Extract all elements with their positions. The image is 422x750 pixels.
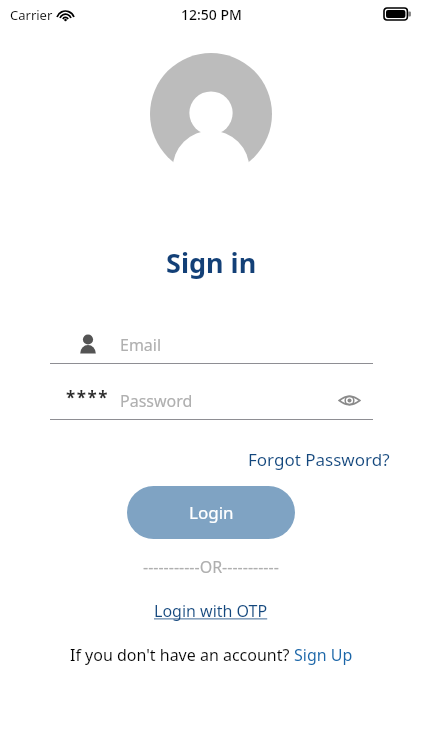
button[interactable]: Email [50, 325, 373, 364]
staticText: If you don't have an account? [70, 644, 294, 666]
staticText: **** [66, 386, 109, 409]
button[interactable]: **** [50, 381, 373, 420]
staticText: Password [120, 390, 193, 412]
staticText: Login with OTP [154, 600, 268, 622]
button[interactable]: Login with OTP [150, 598, 272, 624]
staticText: Sign Up [294, 644, 353, 666]
staticText: 12:50 PM [181, 5, 242, 24]
button[interactable]: Forgot Password? [244, 445, 394, 474]
button[interactable]: Sign Up [294, 644, 353, 666]
staticText: Forgot Password? [248, 448, 390, 471]
button[interactable]: Show password [336, 387, 363, 414]
staticText: Sign in [166, 244, 257, 281]
staticText: Carrier [10, 6, 53, 24]
staticText: -----------OR----------- [143, 556, 279, 578]
button[interactable]: Login [127, 486, 295, 539]
staticText: Login [189, 501, 234, 524]
staticText: Email [120, 334, 162, 356]
